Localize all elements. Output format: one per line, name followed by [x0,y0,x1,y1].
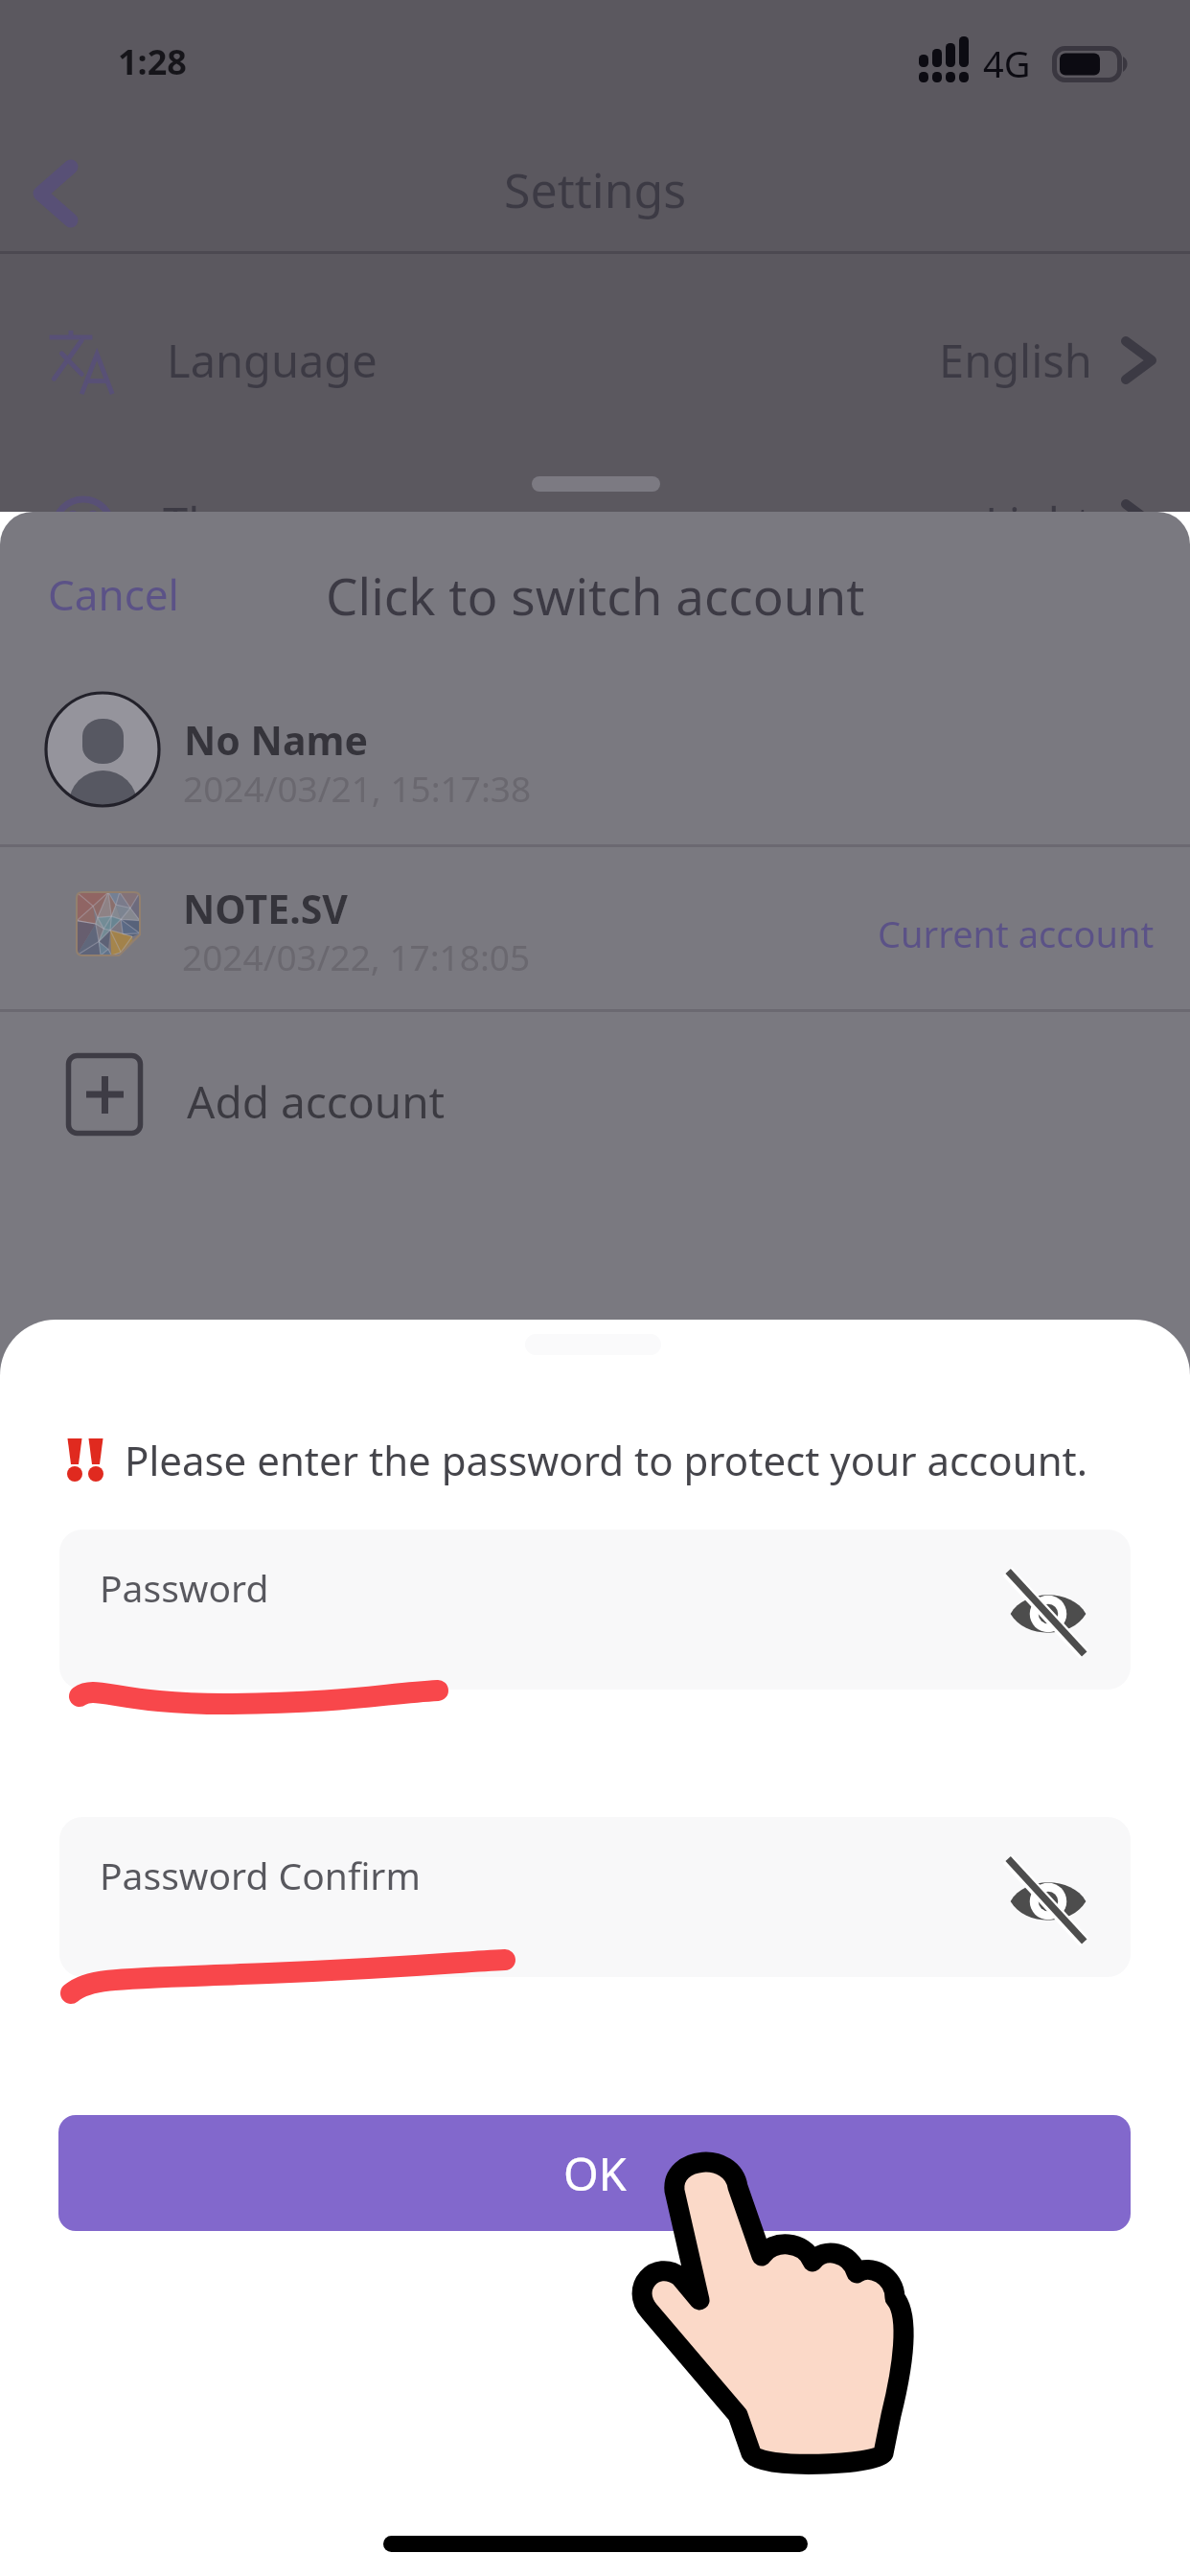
staticText: English [939,330,1092,391]
staticText: 2024/03/21, 15:17:38 [183,764,532,812]
staticText: Please enter the password to protect you… [125,1433,1088,1487]
button[interactable]: No Name [0,655,1190,844]
staticText: Password Confirm [100,1850,421,1900]
staticText: Light [985,493,1092,554]
button[interactable]: Language [0,284,1190,437]
staticText: NOTE.SV [183,882,348,935]
button[interactable]: Add account [0,1012,1190,1175]
staticText: Current account [878,908,1155,958]
staticText: Language [167,330,378,391]
button[interactable]: Show password confirm [1009,1862,1087,1941]
button[interactable]: Cancel [48,565,179,623]
staticText: No Name [184,713,368,767]
staticText: Theme [163,493,309,554]
staticText: Cancel [48,565,179,623]
button[interactable]: Back [10,142,115,247]
button[interactable]: Theme [0,447,1190,600]
staticText: 2024/03/22, 17:18:05 [182,932,531,980]
staticText: Add account [187,1071,446,1132]
button[interactable]: Password Confirm [59,1817,1131,1977]
button[interactable]: Password [59,1529,1131,1690]
button[interactable]: Show password [1009,1575,1087,1653]
staticText: Settings [504,157,687,222]
button[interactable]: OK [58,2115,1131,2231]
staticText: OK [563,2143,627,2204]
staticText: 4G [983,38,1031,88]
staticText: Password [100,1562,269,1613]
staticText: 1:28 [118,38,187,85]
button[interactable]: NOTE.SV [0,847,1190,1012]
staticText: Click to switch account [326,561,865,630]
